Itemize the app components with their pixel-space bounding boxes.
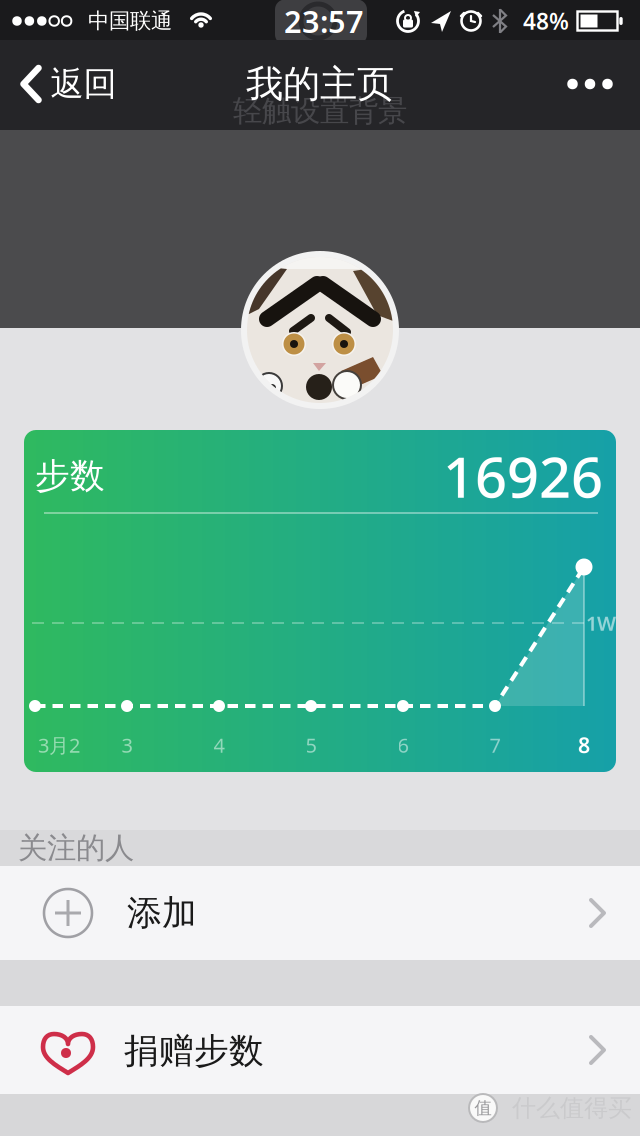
staticText: 什么值得买 [512, 1093, 632, 1123]
staticText: 捐赠步数 [124, 1030, 264, 1072]
staticText: 6 [397, 732, 408, 758]
staticText: 3 [121, 732, 132, 758]
staticText: 我的主页 [246, 61, 394, 107]
staticText: 16926 [443, 439, 603, 513]
button[interactable]: 捐赠步数 [0, 1006, 640, 1094]
staticText: 4 [213, 732, 224, 758]
button[interactable]: 添加 [0, 866, 640, 960]
staticText: 23:57 [284, 1, 364, 41]
staticText: 8 [578, 731, 590, 759]
staticText: 轻触设置背景 [233, 93, 407, 129]
staticText: 值 [474, 1097, 491, 1119]
staticText: 3月2 [38, 732, 80, 758]
staticText: 添加 [127, 892, 197, 934]
staticText: 5 [305, 732, 316, 758]
staticText: 返回 [50, 63, 116, 104]
staticText: 1W [586, 610, 616, 636]
staticText: 步数 [35, 455, 105, 497]
staticText: 7 [489, 732, 500, 758]
staticText: 48% [523, 6, 569, 36]
button[interactable]: 返回 [19, 39, 116, 129]
button[interactable]: 设置背景 [241, 251, 399, 409]
button[interactable]: 更多 [555, 54, 625, 114]
staticText: 中国联通 [88, 8, 172, 34]
staticText: 关注的人 [18, 830, 134, 866]
